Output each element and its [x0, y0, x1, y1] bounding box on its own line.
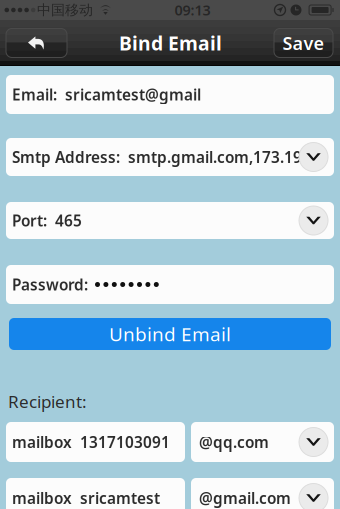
staticText: @gmail.com [199, 488, 291, 508]
staticText: mailbox sricamtest [12, 488, 160, 508]
staticText: Save [282, 31, 324, 55]
staticText: Bind Email [119, 30, 222, 56]
button[interactable]: Back [6, 28, 67, 57]
staticText: Unbind Email [109, 321, 231, 346]
staticText: Port: 465 [12, 210, 82, 231]
staticText: 09:13 [174, 0, 210, 19]
button[interactable]: Save [274, 28, 333, 57]
staticText: 中国移动 [37, 1, 93, 19]
staticText: Smtp Address: smtp.gmail.com,173.194 [12, 147, 311, 167]
staticText: mailbox 1317103091 [12, 432, 170, 452]
staticText: Password: [12, 274, 88, 295]
staticText: Email: sricamtest@gmail [12, 84, 201, 105]
button[interactable]: Unbind Email [9, 318, 331, 350]
staticText: Recipient: [8, 390, 87, 413]
staticText: @qq.com [199, 432, 269, 452]
